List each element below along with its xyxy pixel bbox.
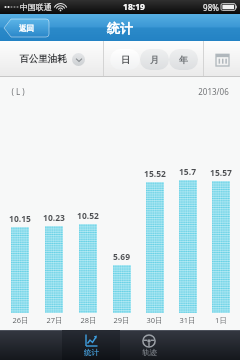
- button[interactable]: 5.69: [105, 251, 138, 325]
- button[interactable]: 15.57: [204, 167, 237, 325]
- staticText: 28日: [80, 315, 97, 325]
- staticText: 2013/06: [198, 86, 229, 97]
- staticText: 15.57: [210, 167, 232, 179]
- staticText: 年: [179, 54, 188, 65]
- staticText: 百公里油耗: [19, 53, 67, 65]
- staticText: 中国联通: [20, 2, 52, 12]
- staticText: 返回: [19, 24, 34, 33]
- staticText: 10.15: [9, 213, 31, 225]
- staticText: 10.23: [43, 212, 65, 224]
- staticText: 98%: [203, 2, 219, 13]
- button[interactable]: 15.52: [138, 168, 171, 325]
- staticText: 29日: [113, 315, 130, 325]
- staticText: 月: [150, 54, 159, 65]
- button[interactable]: 10.15: [3, 213, 37, 325]
- button[interactable]: 月: [140, 49, 169, 70]
- button[interactable]: 选择日期: [204, 41, 240, 77]
- staticText: ( L ): [11, 86, 25, 97]
- staticText: 15.7: [179, 166, 196, 178]
- staticText: 26日: [12, 315, 29, 325]
- button[interactable]: 返回: [4, 19, 49, 37]
- button[interactable]: 轨迹: [120, 330, 178, 360]
- staticText: 轨迹: [142, 348, 157, 357]
- staticText: 31日: [179, 315, 196, 325]
- staticText: 5.69: [113, 251, 130, 263]
- button[interactable]: 10.23: [37, 212, 71, 325]
- button[interactable]: 百公里油耗: [0, 41, 103, 77]
- button[interactable]: 15.7: [171, 166, 204, 325]
- staticText: 18:19: [123, 1, 145, 13]
- staticText: 30日: [146, 315, 163, 325]
- button[interactable]: 统计: [62, 330, 120, 360]
- staticText: 27日: [46, 315, 63, 325]
- staticText: 统计: [84, 348, 99, 357]
- staticText: 统计: [107, 20, 133, 36]
- staticText: 日: [121, 54, 130, 65]
- staticText: 10.52: [77, 210, 99, 222]
- staticText: 1日: [215, 315, 227, 325]
- button[interactable]: 年: [169, 49, 198, 70]
- button[interactable]: 10.52: [71, 210, 105, 325]
- staticText: 15.52: [144, 168, 166, 180]
- button[interactable]: 日: [110, 49, 140, 70]
